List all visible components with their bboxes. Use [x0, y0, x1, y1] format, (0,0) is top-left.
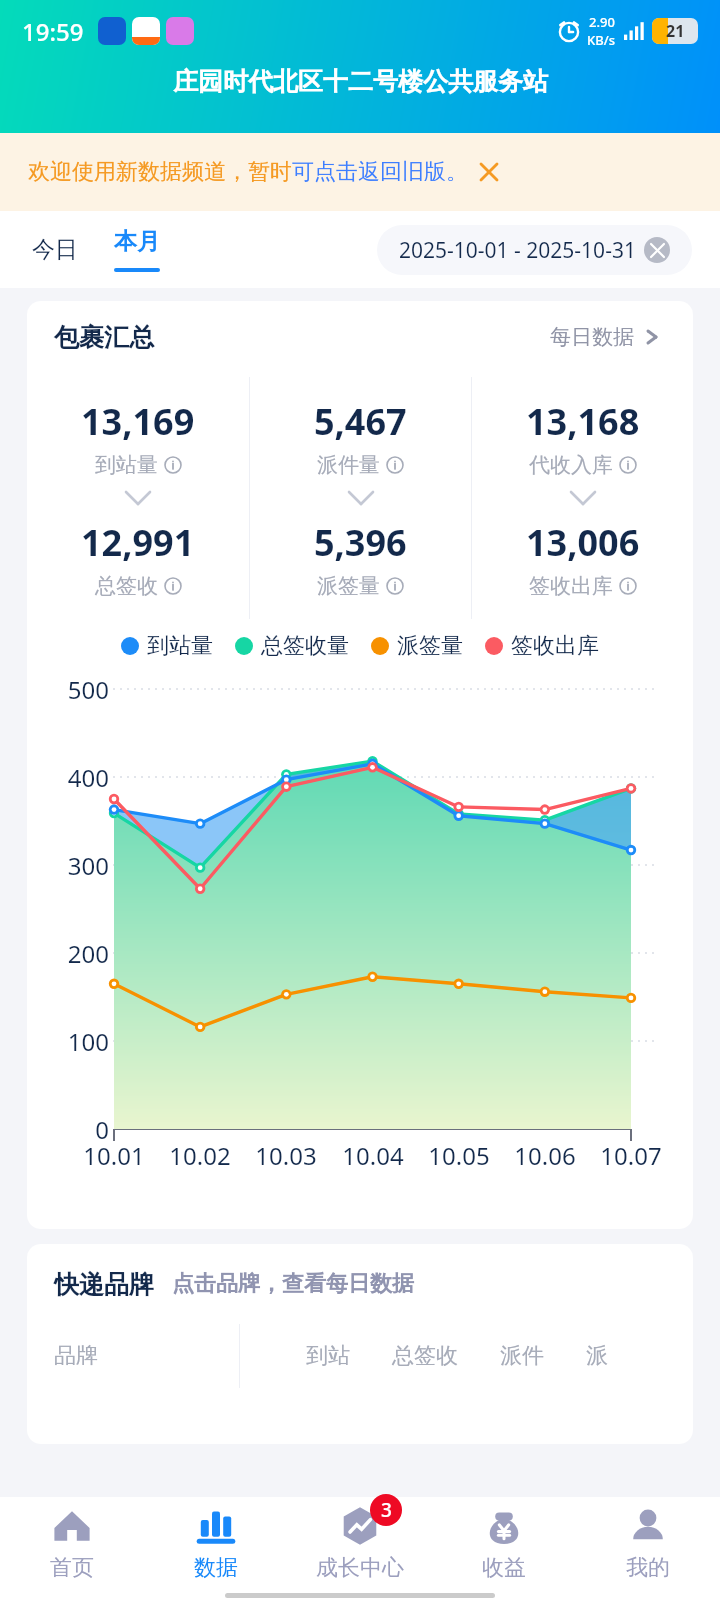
staticText: 数据	[194, 1554, 238, 1582]
button[interactable]: 首页	[0, 1497, 144, 1590]
staticText: 19:59	[22, 15, 84, 48]
button[interactable]: 数据	[144, 1497, 288, 1590]
button[interactable]: 收益	[432, 1497, 576, 1590]
button[interactable]: 每日数据	[546, 320, 666, 354]
staticText: 0	[95, 1113, 109, 1146]
staticText: 总签收	[95, 573, 158, 599]
staticText: 快递品牌	[54, 1269, 154, 1300]
staticText: 12,991	[81, 518, 195, 567]
staticText: 13,168	[526, 397, 640, 446]
staticText: 派签量	[397, 632, 463, 660]
staticText: 签收出库	[529, 573, 613, 599]
staticText: 100	[67, 1025, 109, 1058]
staticText: 5,396	[314, 518, 407, 567]
staticText: 成长中心	[316, 1554, 404, 1582]
staticText: 欢迎使用新数据频道，暂时	[28, 158, 292, 186]
staticText: 庄园时代北区十二号楼公共服务站	[173, 66, 548, 97]
staticText: 代收入库	[529, 452, 613, 478]
staticText: 2025-10-01 - 2025-10-31	[399, 236, 636, 265]
staticText: 派	[586, 1342, 608, 1370]
staticText: 总签收量	[261, 632, 349, 660]
staticText: 派件量	[317, 452, 380, 478]
staticText: 21	[666, 20, 685, 42]
staticText: 10.07	[600, 1139, 662, 1172]
staticText: 10.01	[83, 1139, 145, 1172]
staticText: 点击品牌，查看每日数据	[172, 1270, 414, 1298]
button[interactable]: 今日	[26, 225, 84, 274]
staticText: 500	[67, 673, 109, 706]
staticText: 签收出库	[511, 632, 599, 660]
staticText: 包裹汇总	[54, 322, 154, 353]
staticText: 3	[381, 1497, 392, 1523]
staticText: 400	[67, 761, 109, 794]
staticText: 今日	[32, 235, 78, 264]
staticText: 收益	[482, 1554, 526, 1582]
button[interactable]: 3	[288, 1497, 432, 1590]
staticText: 2.90	[589, 13, 615, 31]
staticText: 200	[67, 937, 109, 970]
staticText: 10.04	[342, 1139, 404, 1172]
staticText: 到站量	[147, 632, 213, 660]
staticText: 10.06	[514, 1139, 576, 1172]
staticText: 13,169	[81, 397, 195, 446]
staticText: 可点击返回旧版。	[292, 158, 468, 186]
staticText: 派签量	[317, 573, 380, 599]
staticText: 本月	[114, 227, 160, 256]
button[interactable]: 关闭	[474, 157, 504, 187]
staticText: KB/s	[587, 31, 616, 49]
staticText: 总签收	[392, 1342, 458, 1370]
staticText: 13,006	[526, 518, 640, 567]
staticText: 5,467	[314, 397, 407, 446]
staticText: 10.05	[428, 1139, 490, 1172]
staticText: 300	[67, 849, 109, 882]
staticText: 10.03	[255, 1139, 317, 1172]
staticText: 10.02	[169, 1139, 231, 1172]
button[interactable]: 2025-10-01 - 2025-10-31	[377, 225, 692, 275]
staticText: 派件	[500, 1342, 544, 1370]
button[interactable]: 我的	[576, 1497, 720, 1590]
staticText: 到站	[306, 1342, 350, 1370]
staticText: 首页	[50, 1554, 94, 1582]
staticText: 到站量	[95, 452, 158, 478]
staticText: 品牌	[54, 1342, 98, 1370]
button[interactable]: 本月	[108, 227, 166, 272]
staticText: 每日数据	[550, 324, 634, 350]
staticText: 我的	[626, 1554, 670, 1582]
